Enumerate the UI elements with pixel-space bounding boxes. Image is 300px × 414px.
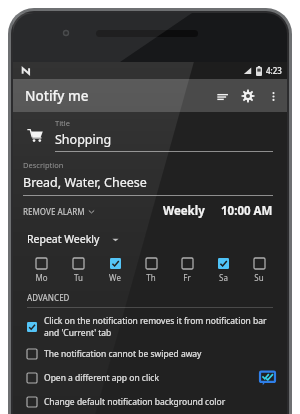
staticText: Fr	[183, 272, 191, 283]
button[interactable]: Description	[13, 158, 287, 196]
button[interactable]: REMOVE ALARM	[23, 206, 95, 217]
staticText: Notify me	[25, 87, 209, 105]
staticText: ADVANCED	[27, 292, 70, 303]
staticText: and 'Current' tab	[44, 327, 112, 339]
button[interactable]: More options	[261, 83, 285, 109]
staticText: Th	[146, 272, 156, 283]
staticText: Sa	[219, 272, 228, 283]
button[interactable]: 10:00 AM	[221, 203, 273, 219]
staticText: Change default notification background c…	[44, 396, 226, 408]
button[interactable]: Weekly	[163, 203, 205, 219]
staticText: Su	[254, 272, 264, 283]
staticText: Click on the notification removes it fro…	[44, 315, 267, 327]
staticText: Description	[23, 160, 64, 170]
staticText: Repeat Weekly	[27, 232, 100, 246]
button[interactable]: Fr	[169, 258, 205, 283]
button[interactable]: Repeat Weekly	[27, 232, 119, 246]
button[interactable]: Th	[133, 258, 169, 283]
staticText: Shopping	[55, 131, 112, 148]
button[interactable]: Tu	[60, 258, 97, 283]
button[interactable]: Title	[13, 112, 287, 158]
button[interactable]: The notification cannot be swiped away	[13, 342, 287, 366]
staticText: Title	[55, 118, 70, 128]
button[interactable]: Mo	[23, 258, 60, 283]
button[interactable]: Settings	[235, 83, 261, 109]
staticText: REMOVE ALARM	[23, 206, 85, 217]
button[interactable]: Open a different app on click	[13, 366, 287, 390]
button[interactable]: Choose app	[257, 368, 277, 388]
staticText: Open a different app on click	[44, 372, 159, 384]
staticText: Mo	[35, 272, 48, 283]
button[interactable]: Su	[241, 258, 277, 283]
button[interactable]: Sa	[205, 258, 241, 283]
staticText: Tu	[74, 272, 83, 283]
button[interactable]: Click on the notification removes it fro…	[13, 312, 287, 342]
staticText: 4:23	[266, 65, 282, 76]
staticText: We	[109, 272, 121, 283]
staticText: Bread, Water, Cheese	[23, 174, 147, 191]
button[interactable]: Change default notification background c…	[13, 390, 287, 414]
button[interactable]: Sort	[209, 83, 235, 109]
button[interactable]: We	[97, 258, 133, 283]
staticText: The notification cannot be swiped away	[44, 348, 202, 360]
